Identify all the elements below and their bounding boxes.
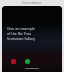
staticText: Text sentence (22, 1, 42, 5)
button[interactable]: Record (11, 59, 16, 64)
button[interactable]: Send (25, 59, 30, 64)
staticText: Give an example of the No True Scotsman … (7, 26, 36, 41)
